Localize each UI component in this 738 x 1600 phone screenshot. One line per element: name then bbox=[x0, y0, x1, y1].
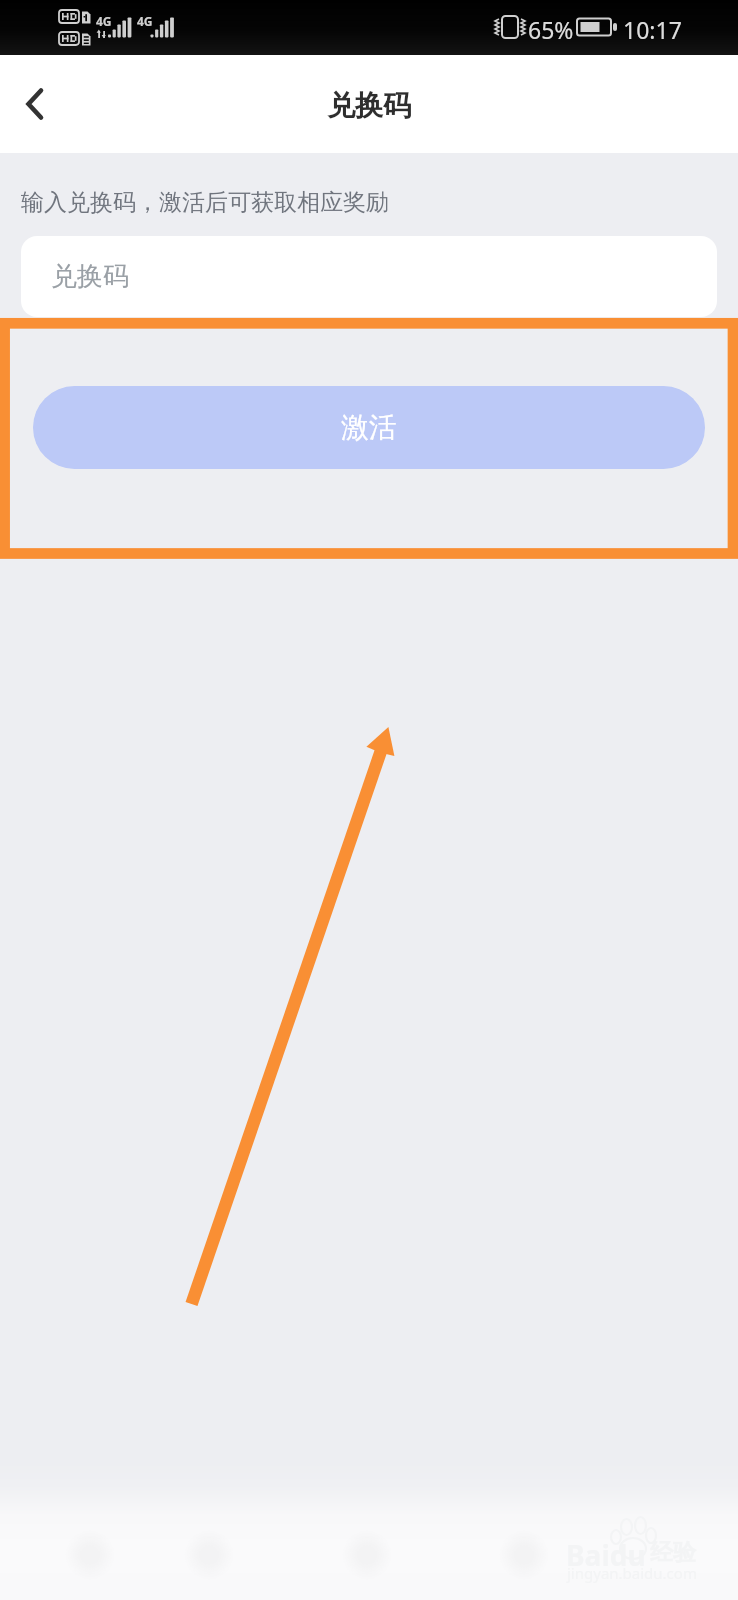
staticText: Baidu bbox=[566, 1536, 646, 1574]
staticText: 兑换码 bbox=[51, 260, 129, 293]
staticText: 经验 bbox=[650, 1538, 696, 1567]
button[interactable]: Back bbox=[0, 69, 70, 139]
staticText: 激活 bbox=[341, 410, 397, 445]
staticText: 4G bbox=[96, 13, 112, 29]
staticText: 65% bbox=[528, 14, 574, 45]
staticText: 兑换码 bbox=[327, 88, 411, 123]
button[interactable]: 兑换码 bbox=[21, 236, 717, 317]
staticText: 输入兑换码，激活后可获取相应奖励 bbox=[21, 188, 389, 217]
staticText: 4G bbox=[137, 13, 153, 29]
staticText: 10:17 bbox=[623, 14, 682, 45]
button[interactable]: 激活 bbox=[33, 386, 705, 469]
